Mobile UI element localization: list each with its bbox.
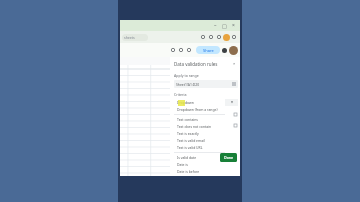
staticText: Share [203,48,214,53]
staticText: Criteria [174,92,187,97]
staticText: Apply to range [174,73,199,78]
staticText: Text does not contain [177,124,212,129]
button[interactable]: Close panel [231,60,238,67]
button[interactable]: Print [177,46,185,54]
button[interactable]: Sheet1!A1:D20 [174,80,238,88]
staticText: ▼ [231,101,233,104]
staticText: Text contains [177,117,198,122]
button[interactable]: Date is [174,161,225,168]
staticText: Date is [177,162,188,167]
button[interactable]: More [232,122,238,128]
staticText: Text is valid URL [177,145,203,150]
staticText: Dropdown (from a range) [177,107,218,112]
button[interactable]: Share [196,46,220,54]
button[interactable]: Criteria dropdown [225,99,238,106]
button[interactable]: Dropdown [174,99,225,106]
staticText: Data validation rules [174,61,218,67]
button[interactable]: Maximize [220,21,229,30]
button[interactable]: Extensions [207,33,215,41]
button[interactable]: Delete rule [232,111,238,117]
button[interactable]: Date is before [174,168,225,175]
button[interactable]: Profile [223,34,230,41]
staticText: Text is valid email [177,138,205,143]
staticText: × [233,61,236,66]
button[interactable]: Close [229,21,238,30]
staticText: Is valid date [177,155,197,160]
button[interactable]: Done [220,153,237,162]
button[interactable]: Undo [169,46,177,54]
button[interactable]: Account [229,46,238,55]
button[interactable]: Minimize [211,21,220,30]
button[interactable]: Text is exactly [174,130,225,137]
button[interactable]: Paint format [185,46,193,54]
button[interactable]: More options [230,33,238,41]
button[interactable]: Text is valid email [174,137,225,144]
button[interactable]: Text is valid URL [174,144,225,151]
button[interactable]: Address bar [122,34,148,41]
button[interactable]: Text contains [174,116,225,123]
button[interactable]: Text does not contain [174,123,225,130]
staticText: sheets [124,35,135,40]
staticText: – [214,22,217,29]
staticText: Done [224,155,234,160]
staticText: Text is exactly [177,131,199,136]
button[interactable]: Is valid date [174,154,225,161]
button[interactable]: Bookmark [215,33,223,41]
staticText: Dropdown [177,100,194,105]
staticText: × [232,22,235,29]
button[interactable]: Comments [222,48,227,53]
staticText: Date is before [177,169,200,174]
staticText: Sheet1!A1:D20 [176,82,200,87]
button[interactable]: Dropdown (from a range) [174,106,225,113]
button[interactable]: Search [199,33,207,41]
staticText: □ [222,23,227,29]
